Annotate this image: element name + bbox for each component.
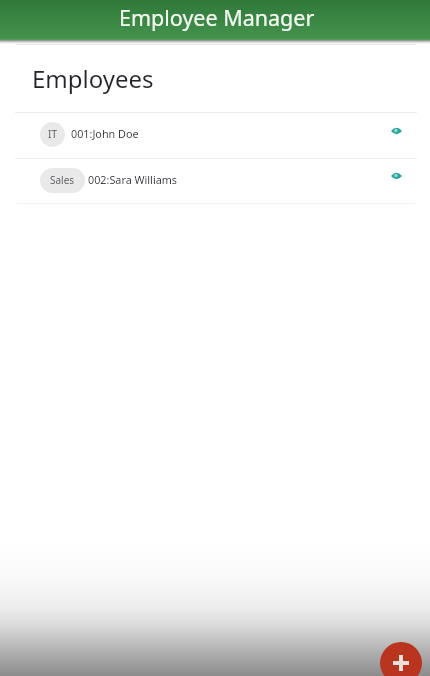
- button[interactable]: Sales: [15, 159, 417, 203]
- button[interactable]: IT: [15, 113, 417, 158]
- button[interactable]: View details: [379, 119, 413, 153]
- staticText: 001:John Doe: [71, 126, 139, 141]
- staticText: Sales: [50, 173, 75, 187]
- staticText: Employees: [32, 62, 154, 95]
- button[interactable]: Add employee: [380, 642, 422, 676]
- staticText: 002:Sara Williams: [88, 172, 178, 187]
- staticText: Employee Manager: [119, 3, 315, 32]
- button[interactable]: View details: [379, 164, 413, 198]
- staticText: IT: [48, 127, 57, 141]
